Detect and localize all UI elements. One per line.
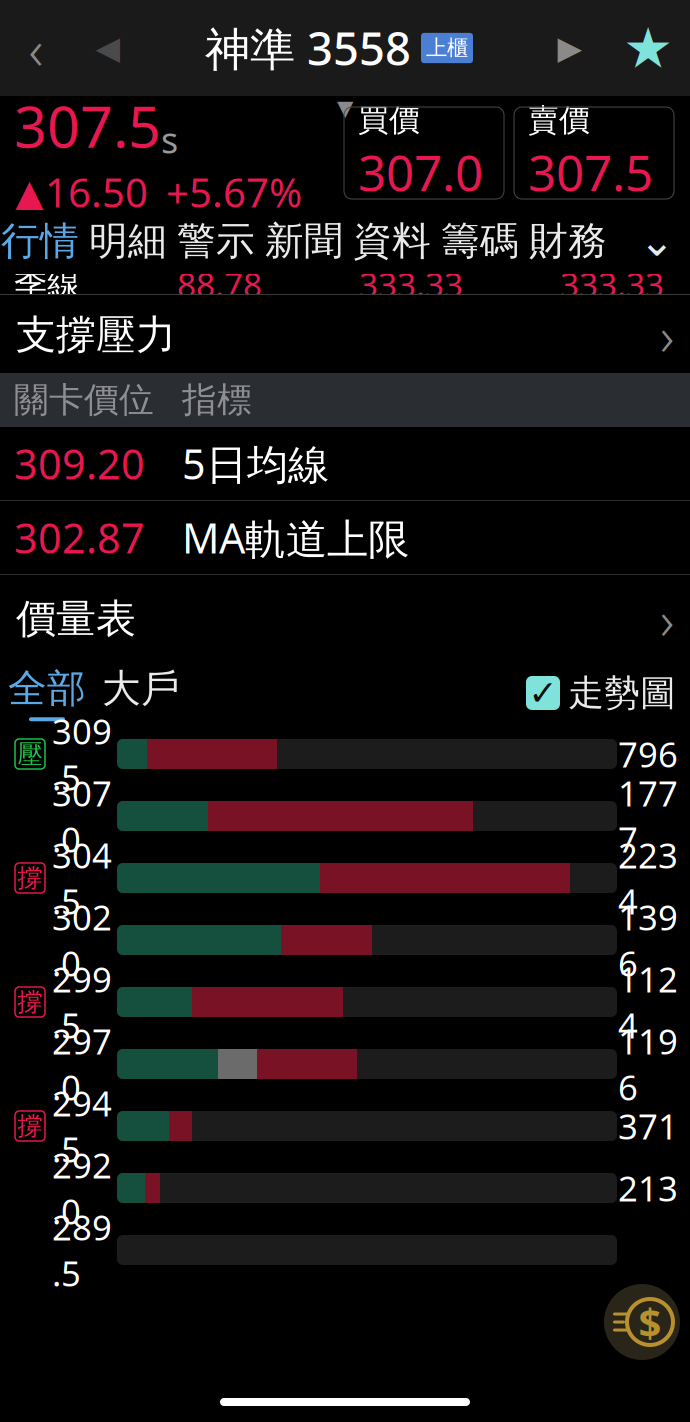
staticText: 新聞 xyxy=(265,217,343,265)
staticText: 上櫃 xyxy=(426,35,468,61)
staticText: 302.0 xyxy=(52,894,112,986)
staticText: ▶ xyxy=(557,30,582,66)
staticText: 289.5 xyxy=(52,1204,112,1296)
staticText: 796 xyxy=(618,731,678,777)
button[interactable]: 309.20 xyxy=(0,427,690,501)
staticText: 333.33 xyxy=(359,262,463,306)
staticText: +5.67% xyxy=(166,165,302,219)
staticText: $ xyxy=(638,1295,661,1348)
staticText: 88.78 xyxy=(177,262,262,306)
staticText: 賣價 xyxy=(528,101,590,139)
button[interactable]: 行情 xyxy=(0,210,84,272)
staticText: 307.5 xyxy=(528,139,653,205)
staticText: 302.87 xyxy=(14,510,145,565)
button[interactable]: Coins xyxy=(604,1284,680,1360)
staticText: 371 xyxy=(618,1103,678,1149)
staticText: 明細 xyxy=(89,217,167,265)
staticText: 走勢圖 xyxy=(568,671,676,715)
staticText: ◀ xyxy=(95,30,120,66)
staticText: 籌碼 xyxy=(441,217,519,265)
button[interactable]: 全部 xyxy=(0,663,94,723)
button[interactable]: 新聞 xyxy=(260,210,348,272)
staticText: 307.0 xyxy=(358,139,483,205)
staticText: 關卡價位 xyxy=(14,379,154,421)
staticText: 指標 xyxy=(182,379,252,421)
button[interactable]: Next stock xyxy=(534,0,606,96)
button[interactable]: 302.87 xyxy=(0,501,690,575)
staticText: › xyxy=(660,584,674,654)
button[interactable]: 警示 xyxy=(172,210,260,272)
staticText: 1124 xyxy=(618,956,678,1048)
button[interactable]: 財務 xyxy=(524,210,612,272)
staticText: 309.20 xyxy=(14,436,145,491)
staticText: 294.5 xyxy=(52,1080,112,1172)
staticText: ✓ xyxy=(528,673,557,713)
button[interactable]: 資料 xyxy=(348,210,436,272)
staticText: 292.0 xyxy=(52,1142,112,1234)
staticText: 資料 xyxy=(353,217,431,265)
button[interactable]: ✓ xyxy=(526,663,690,723)
staticText: 1196 xyxy=(618,1018,678,1110)
staticText: ★ xyxy=(623,16,673,80)
staticText: 撐 xyxy=(17,1110,42,1141)
staticText: 財務 xyxy=(529,217,607,265)
button[interactable]: 支撐壓力 xyxy=(0,297,690,373)
staticText: MA軌道上限 xyxy=(182,510,409,565)
staticText: 299.5 xyxy=(52,956,112,1048)
staticText: 撐 xyxy=(17,986,42,1017)
staticText: 壓 xyxy=(17,738,42,769)
button[interactable]: Back xyxy=(0,0,72,96)
staticText: 神準 3558 xyxy=(205,18,411,78)
staticText: 撐 xyxy=(17,862,42,893)
button[interactable]: 大戶 xyxy=(94,663,188,723)
button[interactable]: 買價 xyxy=(344,107,504,199)
staticText: 213 xyxy=(618,1165,678,1211)
staticText: ⌄ xyxy=(639,217,675,265)
staticText: 2234 xyxy=(618,832,678,924)
button[interactable]: Add to favourites xyxy=(606,0,690,96)
staticText: 季線 xyxy=(14,263,80,304)
button[interactable]: 價量表 xyxy=(0,575,690,663)
staticText: 1396 xyxy=(618,894,678,986)
staticText: 警示 xyxy=(177,217,255,265)
staticText: ‹ xyxy=(28,11,43,85)
button[interactable]: 籌碼 xyxy=(436,210,524,272)
button[interactable]: Previous stock xyxy=(72,0,144,96)
staticText: 價量表 xyxy=(16,594,136,643)
staticText: 297.0 xyxy=(52,1018,112,1110)
staticText: 支撐壓力 xyxy=(16,310,176,359)
staticText: ▼ xyxy=(337,96,353,120)
button[interactable]: 賣價 xyxy=(514,107,674,199)
staticText: 1777 xyxy=(618,770,678,862)
staticText: 買價 xyxy=(358,101,420,139)
staticText: 大戶 xyxy=(102,665,180,712)
button[interactable]: More tabs xyxy=(620,210,690,272)
staticText: s xyxy=(161,116,178,163)
button[interactable]: 明細 xyxy=(84,210,172,272)
staticText: ▲16.50 xyxy=(14,165,148,219)
staticText: 304.5 xyxy=(52,832,112,924)
staticText: 行情 xyxy=(1,217,79,265)
staticText: 307.0 xyxy=(52,770,112,862)
staticText: 全部 xyxy=(8,665,86,712)
staticText: 5日均線 xyxy=(182,436,329,491)
staticText: 307.5 xyxy=(14,87,161,163)
staticText: › xyxy=(660,300,674,370)
staticText: 333.33 xyxy=(560,262,664,306)
staticText: 309.5 xyxy=(52,708,112,800)
